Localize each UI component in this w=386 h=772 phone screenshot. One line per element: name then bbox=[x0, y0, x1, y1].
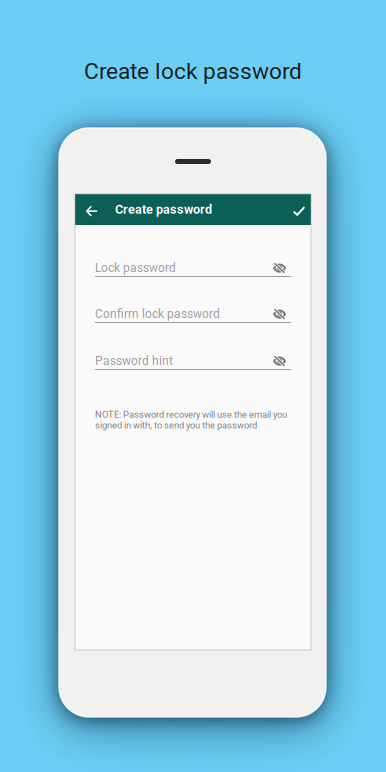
staticText: Create lock password bbox=[84, 58, 302, 85]
staticText: Password hint bbox=[95, 354, 173, 368]
button[interactable]: Lock password bbox=[95, 258, 291, 276]
button[interactable]: Password hint bbox=[95, 351, 291, 369]
button[interactable]: Back bbox=[79, 195, 105, 226]
button[interactable]: Confirm lock password bbox=[95, 304, 291, 322]
button[interactable]: Create password bbox=[115, 194, 212, 225]
button[interactable]: Save bbox=[286, 195, 312, 226]
staticText: Create password bbox=[115, 202, 212, 217]
staticText: Lock password bbox=[95, 261, 176, 275]
staticText: Confirm lock password bbox=[95, 307, 220, 321]
staticText: NOTE: Password recovery will use the ema… bbox=[95, 409, 287, 431]
